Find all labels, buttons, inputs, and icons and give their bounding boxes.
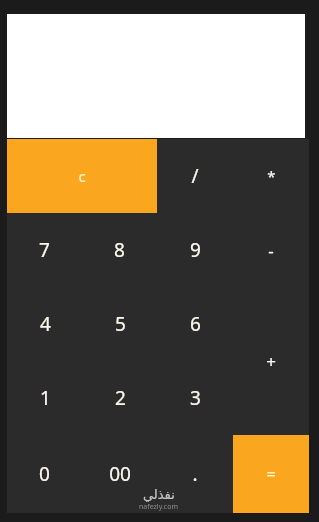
- button[interactable]: /: [157, 139, 233, 213]
- button[interactable]: -: [233, 213, 309, 287]
- staticText: 00: [109, 461, 131, 487]
- staticText: 2: [115, 385, 126, 411]
- button[interactable]: 1: [7, 361, 83, 435]
- button[interactable]: 00: [82, 435, 157, 513]
- staticText: -: [268, 239, 274, 262]
- button[interactable]: c: [7, 139, 157, 213]
- button[interactable]: =: [233, 435, 309, 513]
- staticText: 0: [39, 461, 50, 487]
- staticText: نفذلي: [143, 487, 175, 502]
- staticText: 8: [114, 237, 125, 263]
- button[interactable]: 0: [7, 435, 82, 513]
- staticText: nafezly.com: [139, 502, 178, 512]
- staticText: 3: [190, 385, 201, 411]
- staticText: 9: [190, 237, 201, 263]
- staticText: .: [192, 461, 198, 487]
- button[interactable]: .: [157, 435, 233, 513]
- button[interactable]: +: [233, 287, 309, 435]
- button[interactable]: 3: [158, 361, 233, 435]
- button[interactable]: 2: [83, 361, 158, 435]
- button[interactable]: *: [233, 139, 309, 213]
- staticText: 1: [40, 385, 51, 411]
- staticText: /: [191, 163, 199, 189]
- staticText: 7: [39, 237, 50, 263]
- staticText: +: [266, 350, 276, 373]
- staticText: 4: [40, 311, 51, 337]
- staticText: =: [266, 463, 276, 485]
- button[interactable]: 5: [83, 287, 158, 361]
- staticText: 6: [190, 311, 201, 337]
- button[interactable]: 6: [158, 287, 233, 361]
- staticText: 5: [115, 311, 126, 337]
- staticText: *: [267, 166, 276, 186]
- button[interactable]: 8: [82, 213, 157, 287]
- button[interactable]: 9: [157, 213, 233, 287]
- staticText: c: [78, 166, 86, 186]
- button[interactable]: 7: [7, 213, 82, 287]
- button[interactable]: 4: [7, 287, 83, 361]
